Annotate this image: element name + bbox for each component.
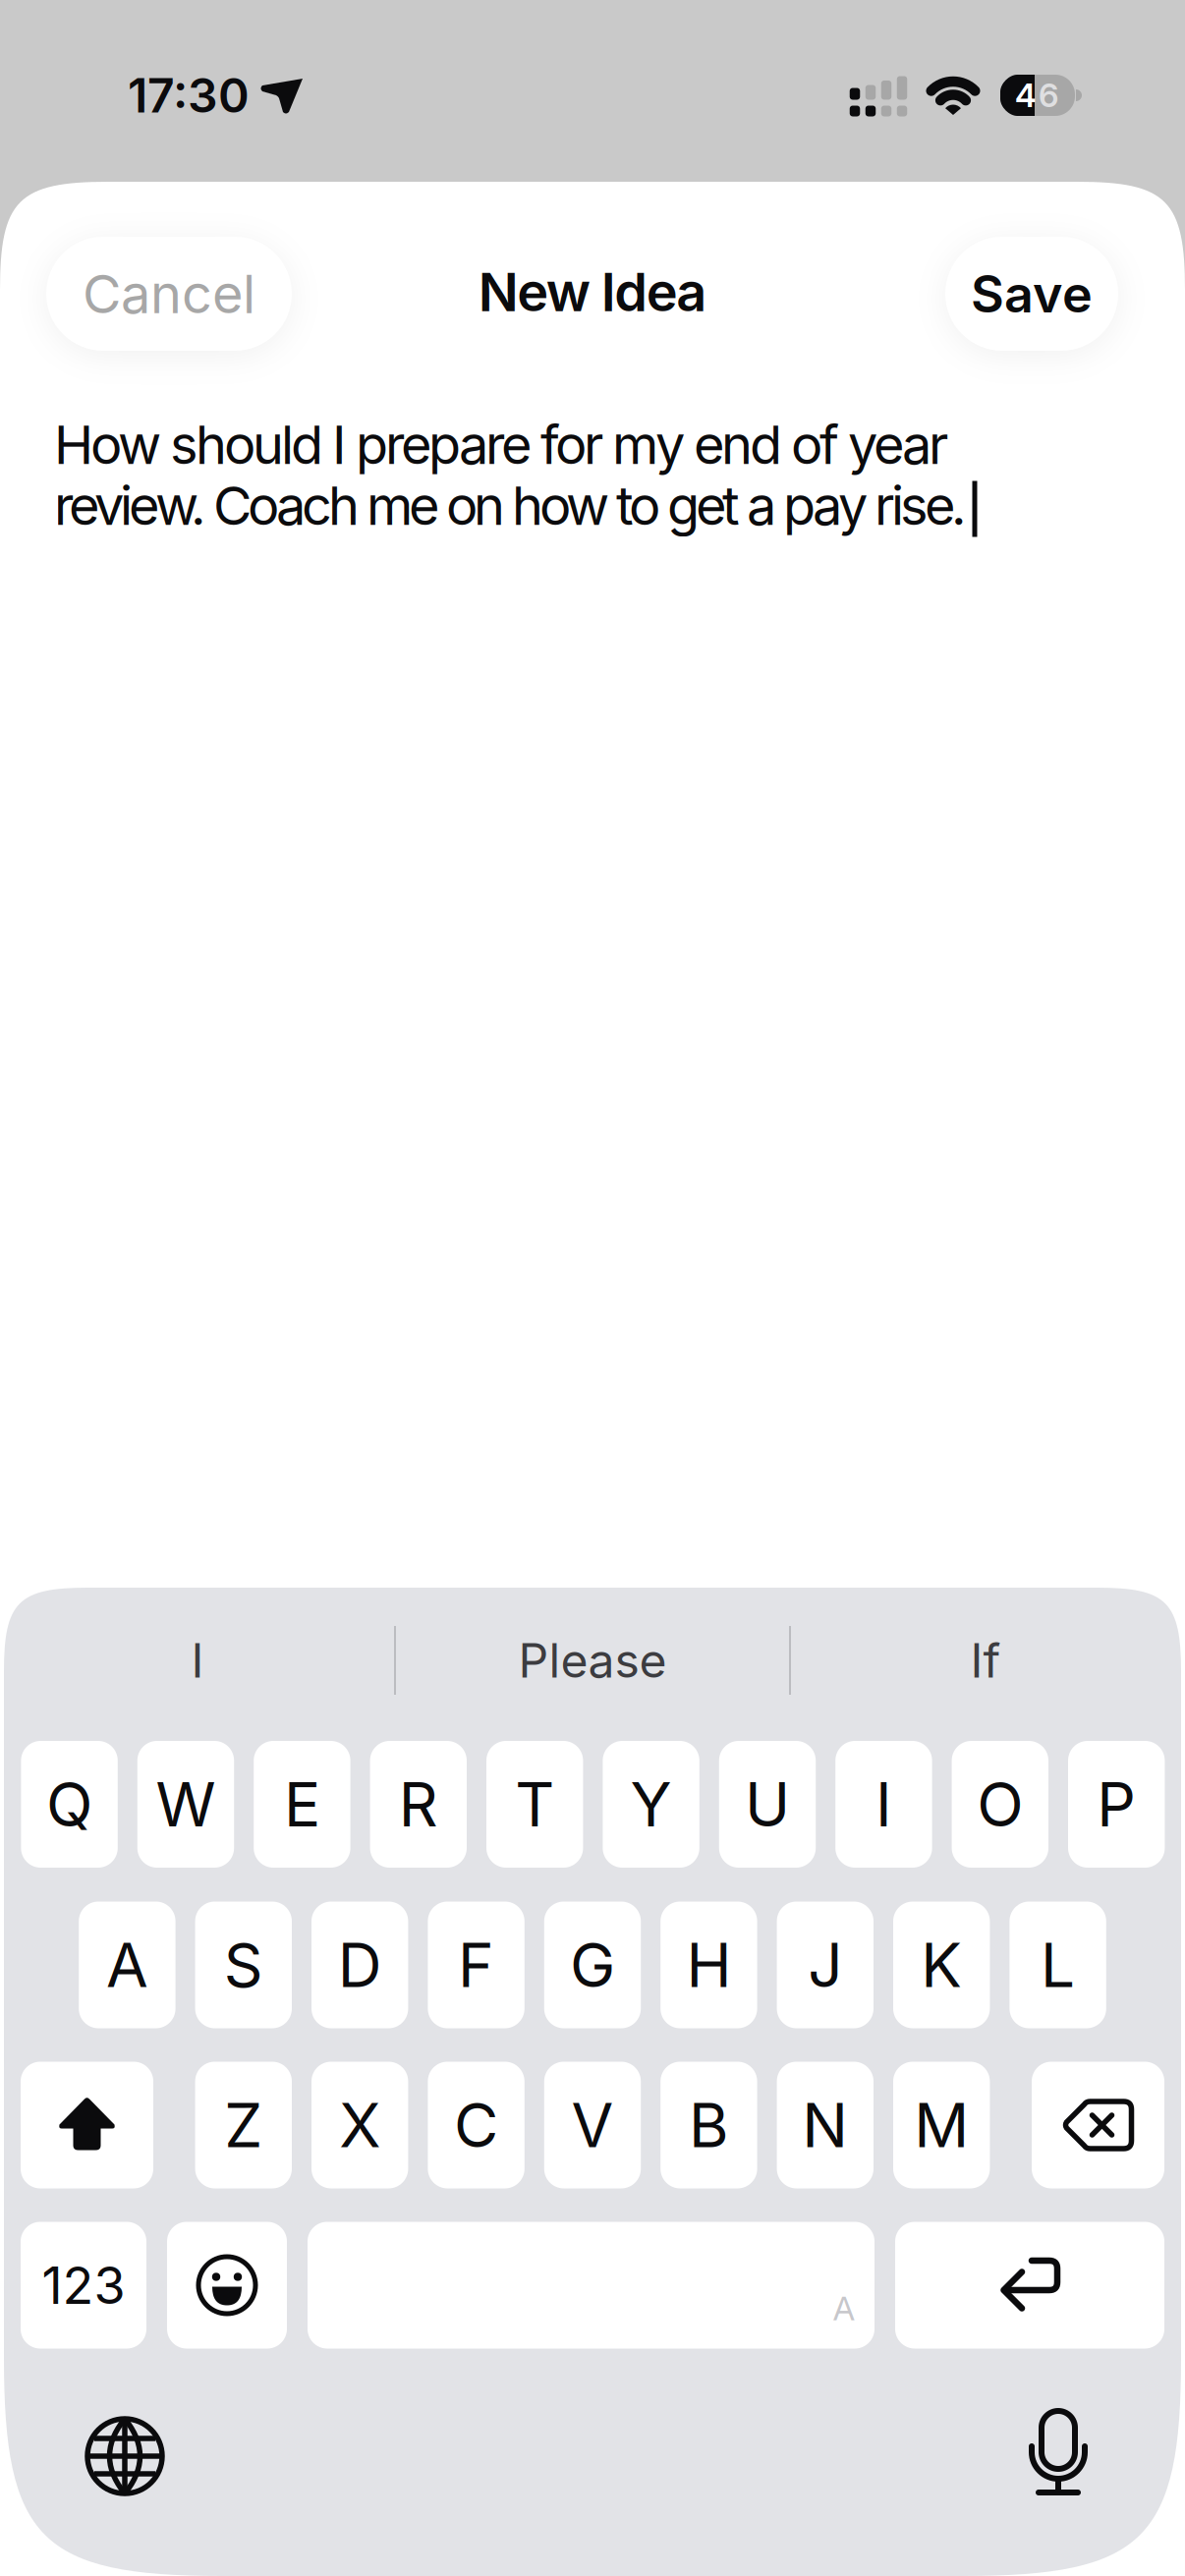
staticText: Z xyxy=(224,2088,263,2162)
button[interactable]: Dictate xyxy=(1004,2400,1112,2508)
staticText: Please xyxy=(518,1632,667,1689)
staticText: I xyxy=(191,1632,204,1689)
button[interactable]: I xyxy=(835,1741,932,1868)
button[interactable]: U xyxy=(719,1741,816,1868)
button[interactable]: Save xyxy=(945,237,1118,351)
button[interactable]: S xyxy=(195,1902,292,2028)
button[interactable]: G xyxy=(544,1902,641,2028)
staticText: A xyxy=(833,2288,855,2328)
staticText: review. Coach me on how to get a pay ris… xyxy=(54,474,967,538)
staticText: W xyxy=(156,1767,216,1841)
button[interactable]: Cancel xyxy=(46,237,292,351)
staticText: 4 xyxy=(1015,76,1037,115)
staticText: 6 xyxy=(1039,76,1058,115)
button[interactable]: Emoji xyxy=(167,2222,287,2349)
button[interactable]: Y xyxy=(603,1741,699,1868)
staticText: New Idea xyxy=(478,260,707,324)
button[interactable]: A xyxy=(79,1902,175,2028)
staticText: K xyxy=(921,1928,962,2002)
staticText: H xyxy=(686,1928,731,2002)
button[interactable]: Please xyxy=(406,1611,779,1709)
button[interactable]: B xyxy=(660,2062,757,2188)
staticText: A xyxy=(106,1928,148,2002)
staticText: F xyxy=(458,1928,494,2002)
button[interactable]: If xyxy=(799,1611,1172,1709)
staticText: R xyxy=(399,1767,438,1841)
button[interactable]: Shift xyxy=(21,2062,153,2188)
button[interactable]: J xyxy=(777,1902,874,2028)
button[interactable]: N xyxy=(777,2062,874,2188)
button[interactable]: L xyxy=(1010,1902,1106,2028)
button[interactable]: F xyxy=(428,1902,525,2028)
button[interactable]: C xyxy=(428,2062,525,2188)
button[interactable]: T xyxy=(486,1741,583,1868)
button[interactable]: Q xyxy=(21,1741,118,1868)
staticText: If xyxy=(970,1632,1001,1689)
button[interactable]: I xyxy=(11,1611,384,1709)
staticText: I xyxy=(875,1767,892,1841)
button[interactable]: Next keyboard xyxy=(71,2402,179,2510)
button[interactable]: X xyxy=(311,2062,408,2188)
staticText: M xyxy=(914,2088,969,2162)
staticText: G xyxy=(570,1928,615,2002)
button[interactable]: K xyxy=(893,1902,990,2028)
staticText: P xyxy=(1097,1767,1136,1841)
staticText: X xyxy=(339,2088,380,2162)
staticText: D xyxy=(338,1928,382,2002)
staticText: 17:30 xyxy=(128,67,250,124)
staticText: Y xyxy=(630,1767,672,1841)
staticText: U xyxy=(745,1767,790,1841)
staticText: C xyxy=(454,2088,498,2162)
staticText: V xyxy=(571,2088,614,2162)
button[interactable]: D xyxy=(311,1902,408,2028)
button[interactable]: O xyxy=(952,1741,1048,1868)
button[interactable]: Delete xyxy=(1032,2062,1164,2188)
button[interactable]: H xyxy=(660,1902,757,2028)
button[interactable]: V xyxy=(544,2062,641,2188)
staticText: Cancel xyxy=(83,262,255,326)
staticText: J xyxy=(808,1928,842,2002)
staticText: N xyxy=(802,2088,848,2162)
staticText: E xyxy=(284,1767,320,1841)
button[interactable]: 123 xyxy=(21,2222,146,2349)
staticText: Save xyxy=(971,263,1093,325)
button[interactable]: W xyxy=(137,1741,234,1868)
button[interactable]: Space xyxy=(308,2222,875,2349)
staticText: O xyxy=(977,1767,1023,1841)
staticText: 123 xyxy=(42,2254,125,2316)
staticText: Q xyxy=(46,1767,92,1841)
staticText: L xyxy=(1041,1928,1075,2002)
button[interactable]: Z xyxy=(195,2062,292,2188)
staticText: How should I prepare for my end of year xyxy=(54,413,948,477)
button[interactable]: M xyxy=(893,2062,990,2188)
staticText: S xyxy=(224,1928,263,2002)
staticText: T xyxy=(515,1767,554,1841)
button[interactable]: E xyxy=(254,1741,350,1868)
button[interactable]: P xyxy=(1068,1741,1165,1868)
button[interactable]: Return xyxy=(895,2222,1164,2349)
button[interactable]: R xyxy=(370,1741,467,1868)
staticText: B xyxy=(689,2088,729,2162)
